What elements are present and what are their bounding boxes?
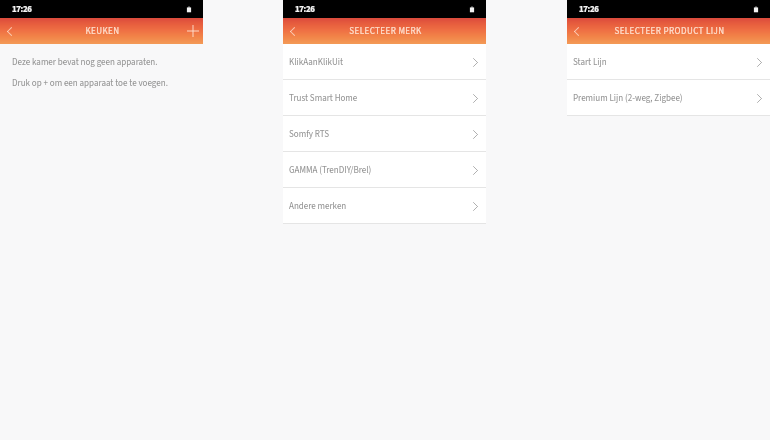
button[interactable]: Add device [183, 18, 203, 44]
button[interactable]: GAMMA (TrenDIY/Brel) [283, 152, 486, 188]
staticText: Druk op + om een apparaat toe te voegen. [12, 77, 168, 90]
staticText: 17:26 [295, 3, 315, 16]
staticText: 17:26 [12, 3, 32, 16]
staticText: Trust Smart Home [289, 92, 358, 105]
staticText: Deze kamer bevat nog geen apparaten. [12, 56, 158, 69]
button[interactable]: Back [567, 18, 586, 44]
staticText: SELECTEER PRODUCT LIJN [614, 25, 725, 38]
staticText: Start Lijn [573, 56, 607, 69]
staticText: SELECTEER MERK [349, 25, 422, 38]
staticText: GAMMA (TrenDIY/Brel) [289, 164, 372, 177]
staticText: KEUKEN [85, 25, 120, 38]
staticText: Premium Lijn (2-weg, Zigbee) [573, 92, 683, 105]
button[interactable]: Start Lijn [567, 44, 770, 80]
staticText: 17:26 [579, 3, 599, 16]
button[interactable]: Andere merken [283, 188, 486, 224]
button[interactable]: Trust Smart Home [283, 80, 486, 116]
staticText: KlikAanKlikUit [289, 56, 343, 69]
button[interactable]: Somfy RTS [283, 116, 486, 152]
staticText: Somfy RTS [289, 128, 330, 141]
button[interactable]: Back [0, 18, 19, 44]
button[interactable]: Premium Lijn (2-weg, Zigbee) [567, 80, 770, 116]
button[interactable]: KlikAanKlikUit [283, 44, 486, 80]
staticText: Andere merken [289, 200, 347, 213]
button[interactable]: Back [283, 18, 302, 44]
